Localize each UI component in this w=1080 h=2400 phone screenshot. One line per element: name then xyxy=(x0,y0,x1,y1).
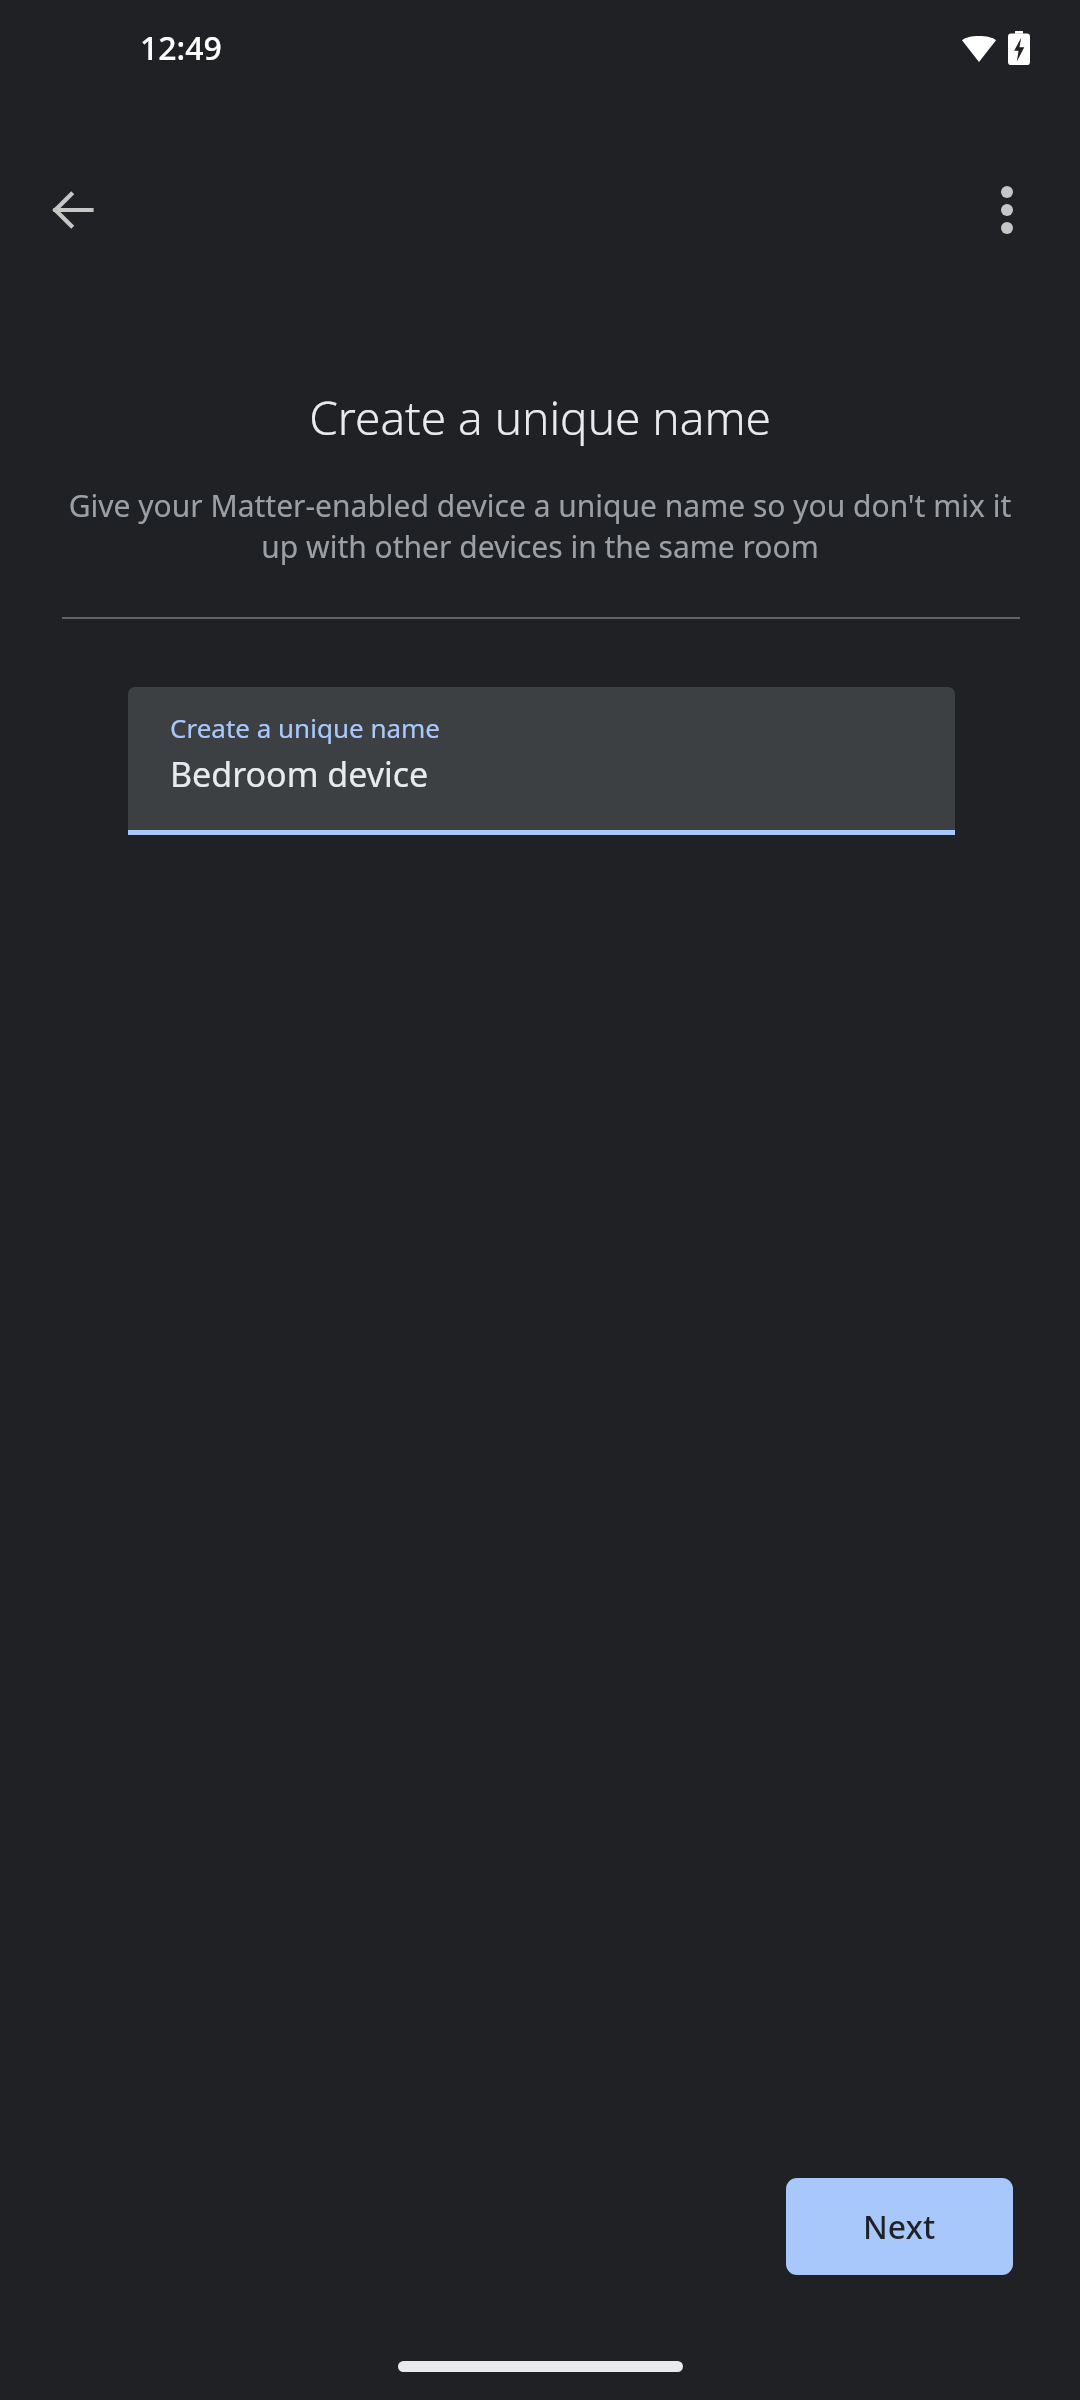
button[interactable]: Create a unique name xyxy=(128,687,955,835)
staticText: Give your Matter-enabled device a unique… xyxy=(58,485,1022,567)
staticText: Next xyxy=(863,2205,936,2249)
button[interactable]: Back xyxy=(25,162,121,258)
staticText: 12:49 xyxy=(140,26,222,70)
staticText: Create a unique name xyxy=(170,710,441,745)
button[interactable]: Next xyxy=(786,2178,1013,2275)
button[interactable]: More options xyxy=(959,162,1055,258)
staticText: Bedroom device xyxy=(170,751,429,797)
staticText: Create a unique name xyxy=(60,386,1020,449)
